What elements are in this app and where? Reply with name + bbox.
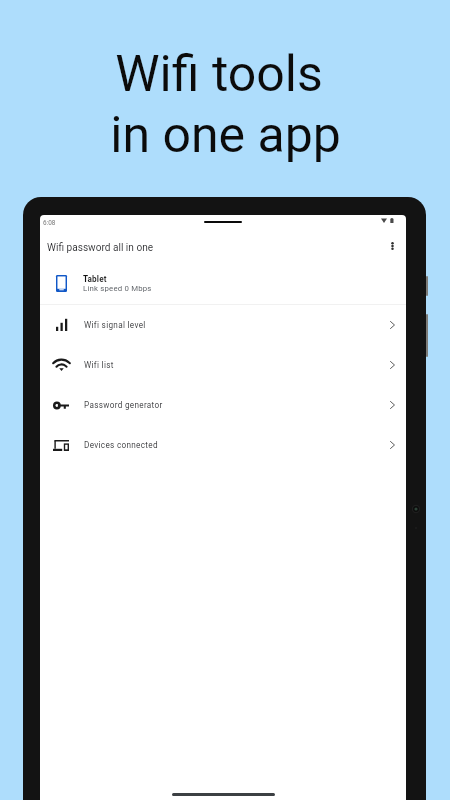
staticText: in one app [110, 106, 341, 165]
staticText: 6:08 [43, 219, 56, 227]
staticText: Link speed 0 Mbps [83, 284, 152, 293]
staticText: Tablet [83, 274, 107, 284]
staticText: Devices connected [84, 440, 378, 450]
button[interactable]: Tablet [40, 264, 406, 304]
staticText: Wifi tools [115, 45, 323, 104]
staticText: Wifi signal level [84, 320, 378, 330]
staticText: Wifi list [84, 360, 378, 370]
staticText: Password generator [84, 400, 378, 410]
button[interactable]: Password generator [40, 385, 406, 425]
staticText: Wifi password all in one [47, 242, 154, 254]
button[interactable]: Wifi signal level [40, 305, 406, 345]
button[interactable]: Devices connected [40, 425, 406, 465]
button[interactable]: More options [382, 236, 402, 256]
button[interactable]: Wifi list [40, 345, 406, 385]
